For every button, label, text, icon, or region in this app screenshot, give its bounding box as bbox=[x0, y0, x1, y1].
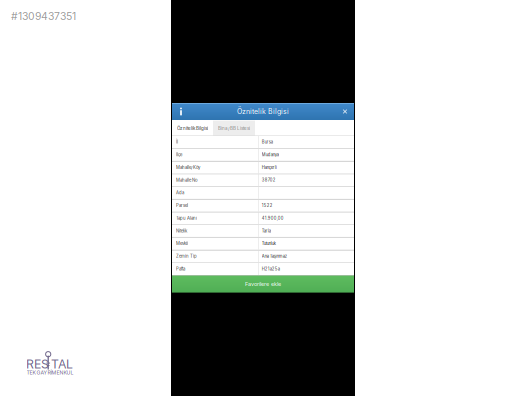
staticText: Pafta bbox=[176, 266, 185, 272]
button[interactable]: Close bbox=[336, 103, 354, 120]
button[interactable]: Öznitelik Bilgisi bbox=[172, 121, 213, 136]
staticText: Mahalle No bbox=[176, 177, 198, 183]
button[interactable]: Favorilere ekle bbox=[172, 276, 354, 293]
staticText: Mevkii bbox=[176, 241, 188, 246]
staticText: Nitelik bbox=[176, 228, 187, 233]
staticText: 41.900,00 bbox=[262, 216, 284, 221]
staticText: 1522 bbox=[262, 203, 273, 208]
staticText: Mudanya bbox=[262, 152, 279, 157]
staticText: Favorilere ekle bbox=[245, 281, 281, 287]
staticText: Mahalle/Köy bbox=[176, 165, 200, 170]
staticText: H21a25a bbox=[262, 266, 280, 271]
staticText: 38702 bbox=[262, 178, 276, 183]
staticText: Ada bbox=[176, 190, 184, 195]
staticText: Zemin Tip bbox=[176, 254, 197, 259]
staticText: RES TAL bbox=[26, 357, 73, 371]
staticText: İlçe bbox=[176, 152, 182, 157]
staticText: Öznitelik Bilgisi bbox=[177, 126, 208, 131]
button[interactable]: Info bbox=[172, 103, 190, 120]
staticText: Tarla bbox=[262, 228, 271, 233]
staticText: Tutunluk bbox=[262, 241, 276, 246]
staticText: Parsel bbox=[176, 203, 188, 208]
staticText: Bina/BB Listesi bbox=[218, 126, 250, 131]
staticText: Öznitelik Bilgisi bbox=[237, 107, 289, 116]
staticText: TEK GAYRİMENKUL bbox=[26, 369, 73, 376]
staticText: #1309437351 bbox=[11, 10, 76, 23]
staticText: Hançerli bbox=[262, 165, 277, 170]
staticText: Tapu Alanı bbox=[176, 216, 197, 221]
staticText: İl bbox=[176, 139, 178, 145]
button[interactable]: Bina/BB Listesi bbox=[213, 121, 255, 136]
staticText: Bursa bbox=[262, 139, 273, 144]
staticText: Ana Taşınmaz bbox=[262, 254, 287, 259]
